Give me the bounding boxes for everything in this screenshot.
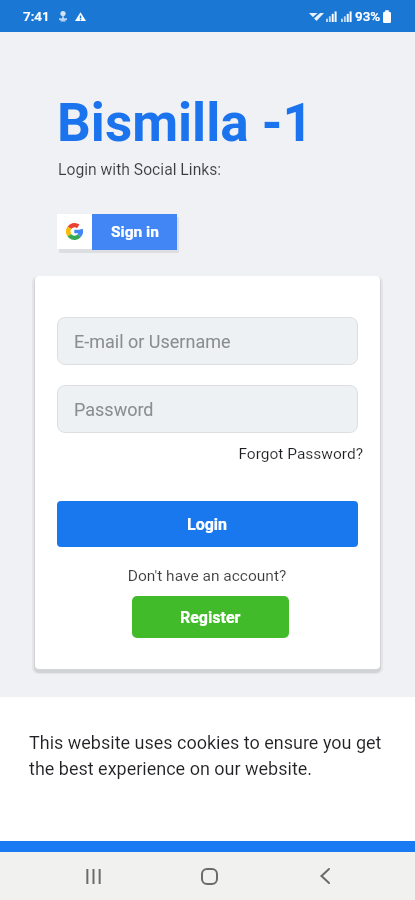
button[interactable]: Register [132,596,289,638]
button[interactable]: Home [173,852,245,900]
button[interactable]: Forgot Password? [57,445,363,463]
staticText: Don't have an account? [57,567,357,585]
staticText: Login with Social Links: [58,160,222,178]
staticText: 7:41 [23,8,50,24]
staticText: 93% [355,8,381,24]
button[interactable]: Back [289,852,361,900]
staticText: Sign in [111,223,159,241]
staticText: Password [74,399,154,420]
staticText: This website uses cookies to ensure you … [29,732,389,779]
staticText: Bismilla -1 [57,92,313,154]
button[interactable]: Password [57,385,358,433]
staticText: E-mail or Username [74,331,231,352]
button[interactable]: Recents [57,852,129,900]
button[interactable]: Login [57,501,358,547]
button[interactable]: E-mail or Username [57,317,358,365]
button[interactable]: Sign in [57,214,177,250]
staticText: Login [187,515,228,534]
staticText: Register [180,608,241,627]
